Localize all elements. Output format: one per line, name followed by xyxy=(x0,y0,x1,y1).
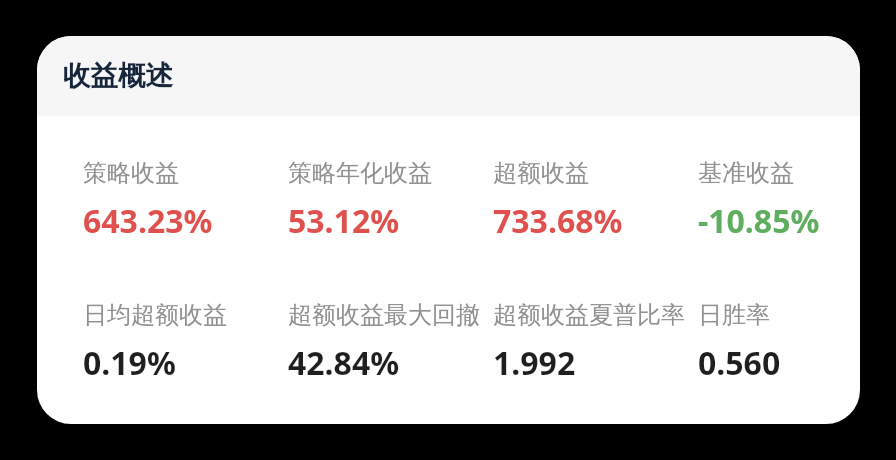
button[interactable]: 收益概述 xyxy=(37,36,860,116)
staticText: 53.12% xyxy=(288,199,400,243)
staticText: 策略收益 xyxy=(83,158,179,188)
staticText: 0.560 xyxy=(698,341,781,385)
staticText: 0.19% xyxy=(83,341,176,385)
button[interactable]: 超额收益夏普比率 xyxy=(493,300,698,385)
staticText: 1.992 xyxy=(493,341,576,385)
button[interactable]: 策略年化收益 xyxy=(288,158,493,243)
staticText: 收益概述 xyxy=(63,59,173,94)
button[interactable]: 策略收益 xyxy=(83,158,288,243)
button[interactable]: 超额收益最大回撤 xyxy=(288,300,493,385)
staticText: 超额收益最大回撤 xyxy=(288,300,480,330)
staticText: 基准收益 xyxy=(698,158,794,188)
staticText: 733.68% xyxy=(493,199,623,243)
staticText: 日均超额收益 xyxy=(83,300,227,330)
button[interactable]: 日均超额收益 xyxy=(83,300,288,385)
staticText: 策略年化收益 xyxy=(288,158,432,188)
staticText: 643.23% xyxy=(83,199,213,243)
staticText: -10.85% xyxy=(698,199,820,243)
button[interactable]: 基准收益 xyxy=(698,158,860,243)
staticText: 超额收益 xyxy=(493,158,589,188)
staticText: 超额收益夏普比率 xyxy=(493,300,685,330)
staticText: 日胜率 xyxy=(698,300,770,330)
staticText: 42.84% xyxy=(288,341,400,385)
button[interactable]: 超额收益 xyxy=(493,158,698,243)
button[interactable]: 日胜率 xyxy=(698,300,860,385)
